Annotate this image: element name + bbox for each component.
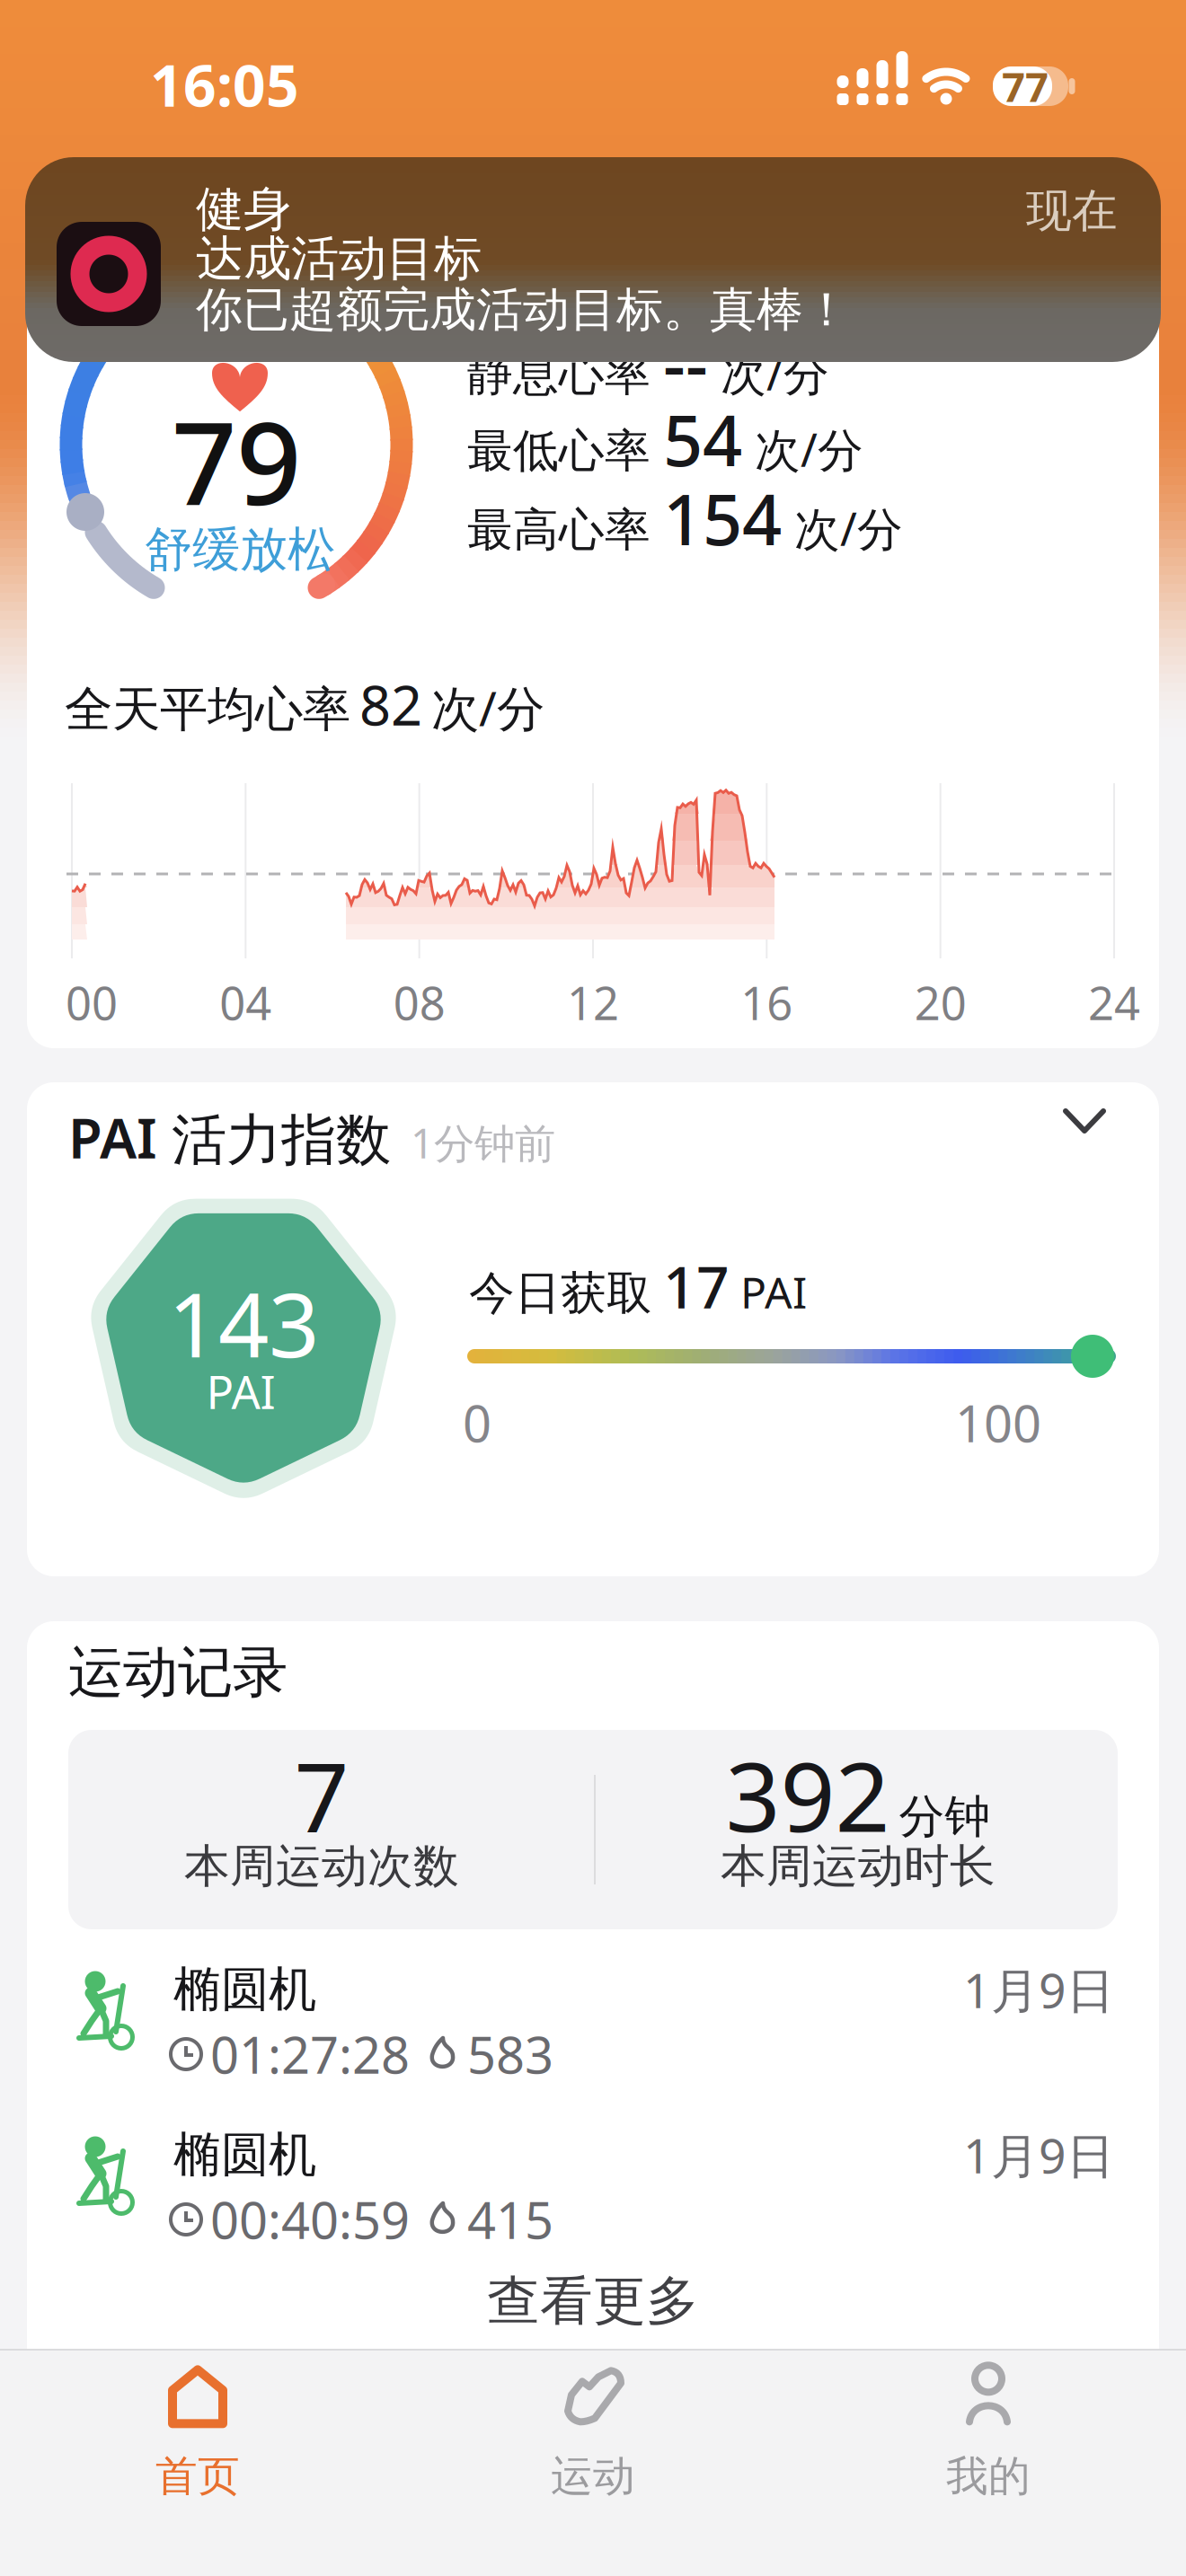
- staticText: 0: [463, 1389, 491, 1456]
- staticText: 次/分: [721, 343, 829, 403]
- staticText: 24: [1088, 972, 1140, 1033]
- staticText: 79: [172, 385, 301, 536]
- staticText: 16:05: [150, 46, 299, 123]
- staticText: PAI: [740, 1263, 807, 1320]
- staticText: 392: [726, 1731, 890, 1858]
- button[interactable]: 椭圆机: [27, 1931, 1132, 2093]
- button[interactable]: 椭圆机: [27, 2096, 1132, 2258]
- staticText: 运动记录: [68, 1639, 288, 1706]
- staticText: 1月9日: [963, 2123, 1114, 2187]
- staticText: 舒缓放松: [145, 520, 335, 579]
- button[interactable]: 展开: [1066, 1111, 1120, 1154]
- staticText: 143: [168, 1264, 319, 1382]
- staticText: 椭圆机: [173, 1960, 316, 2019]
- staticText: 82: [359, 668, 422, 741]
- staticText: 运动: [551, 2451, 635, 2502]
- staticText: 本周运动次数: [184, 1838, 459, 1894]
- staticText: 静息心率: [467, 347, 651, 403]
- staticText: 04: [219, 972, 272, 1033]
- staticText: 54: [663, 393, 742, 485]
- staticText: 12: [567, 972, 619, 1033]
- staticText: 583: [467, 2021, 553, 2088]
- staticText: 1月9日: [963, 1958, 1114, 2021]
- button[interactable]: 我的: [898, 2373, 1078, 2499]
- staticText: 20: [914, 972, 967, 1033]
- staticText: PAI: [206, 1361, 275, 1422]
- staticText: 00: [66, 972, 118, 1033]
- button[interactable]: 首页: [108, 2373, 288, 2499]
- staticText: 100: [955, 1389, 1041, 1456]
- staticText: 01:27:28: [210, 2021, 410, 2088]
- staticText: 全天平均心率: [65, 680, 350, 739]
- staticText: 1分钟前: [411, 1116, 555, 1170]
- staticText: 最高心率: [467, 502, 651, 558]
- staticText: 415: [467, 2186, 553, 2253]
- staticText: 次/分: [794, 498, 903, 558]
- staticText: 7: [294, 1731, 349, 1858]
- staticText: 今日获取: [469, 1265, 652, 1321]
- staticText: 椭圆机: [173, 2125, 316, 2184]
- staticText: 17: [663, 1248, 730, 1324]
- staticText: 你已超额完成活动目标。真棒！: [196, 281, 850, 339]
- staticText: 08: [393, 972, 445, 1033]
- staticText: 77: [1002, 59, 1049, 113]
- staticText: --: [663, 317, 708, 409]
- button[interactable]: 查看更多: [458, 2265, 728, 2337]
- staticText: 达成活动目标: [196, 229, 482, 288]
- staticText: 最低心率: [467, 423, 651, 479]
- staticText: 查看更多: [487, 2269, 699, 2334]
- button[interactable]: 健身: [25, 157, 1161, 362]
- staticText: 16: [741, 972, 793, 1033]
- staticText: 健身: [196, 180, 291, 239]
- staticText: 154: [663, 472, 782, 564]
- staticText: 分钟: [899, 1789, 991, 1845]
- button[interactable]: 运动: [503, 2373, 683, 2499]
- staticText: 00:40:59: [210, 2186, 410, 2253]
- staticText: 本周运动时长: [721, 1838, 996, 1894]
- staticText: 我的: [946, 2451, 1031, 2502]
- staticText: 首页: [155, 2451, 240, 2502]
- staticText: PAI 活力指数: [68, 1100, 391, 1174]
- staticText: 次/分: [755, 419, 863, 479]
- staticText: 次/分: [431, 676, 544, 739]
- staticText: 现在: [1026, 183, 1118, 239]
